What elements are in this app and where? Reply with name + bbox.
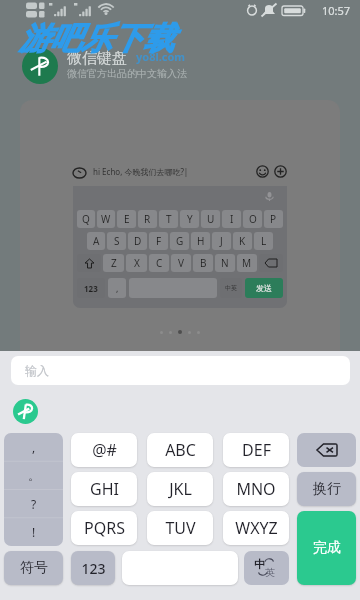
staticText: U bbox=[207, 212, 215, 226]
staticText: H bbox=[197, 234, 205, 248]
staticText: 游吧乐下载 bbox=[19, 19, 174, 58]
staticText: K bbox=[239, 234, 246, 248]
staticText: 123 bbox=[81, 559, 106, 578]
staticText: 。 bbox=[28, 468, 40, 483]
button[interactable]: 符号 bbox=[4, 551, 63, 585]
button[interactable]: WeChat keyboard logo bbox=[13, 399, 38, 424]
staticText: 英 bbox=[265, 566, 275, 579]
staticText: B bbox=[200, 256, 207, 270]
staticText: M bbox=[242, 256, 252, 270]
staticText: I bbox=[230, 212, 234, 226]
staticText: 微信官方出品的中文输入法 bbox=[67, 67, 187, 80]
button[interactable] bbox=[122, 551, 238, 585]
staticText: S bbox=[114, 234, 120, 248]
staticText: ABC bbox=[165, 439, 196, 461]
staticText: N bbox=[221, 256, 229, 270]
staticText: , bbox=[116, 282, 119, 294]
staticText: X bbox=[134, 256, 140, 270]
staticText: MNO bbox=[236, 478, 276, 500]
button[interactable]: @# bbox=[71, 433, 137, 467]
staticText: , bbox=[32, 439, 36, 455]
button[interactable]: Backspace bbox=[297, 433, 356, 467]
button[interactable]: , bbox=[4, 433, 63, 546]
button[interactable]: GHI bbox=[71, 472, 137, 506]
staticText: yo8l.com bbox=[136, 49, 186, 64]
staticText: PQRS bbox=[84, 517, 125, 539]
staticText: A bbox=[93, 234, 100, 248]
staticText: Z bbox=[111, 256, 117, 270]
staticText: 完成 bbox=[313, 539, 341, 557]
staticText: Y bbox=[187, 212, 193, 226]
staticText: G bbox=[176, 234, 184, 248]
staticText: 10:57 bbox=[322, 3, 351, 18]
staticText: 微信键盘 bbox=[67, 49, 127, 68]
staticText: T bbox=[166, 212, 172, 226]
staticText: O bbox=[249, 212, 257, 226]
staticText: GHI bbox=[90, 478, 119, 500]
button[interactable]: PQRS bbox=[71, 511, 137, 545]
staticText: ? bbox=[31, 496, 37, 512]
staticText: 换行 bbox=[313, 480, 341, 498]
staticText: P bbox=[270, 212, 277, 226]
staticText: hi Echo, 今晚我们去哪吃?| bbox=[93, 166, 189, 177]
staticText: WXYZ bbox=[235, 517, 278, 539]
button[interactable]: JKL bbox=[147, 472, 213, 506]
staticText: 发送 bbox=[256, 283, 272, 293]
button[interactable]: 完成 bbox=[297, 511, 356, 585]
button[interactable]: 中 bbox=[244, 551, 289, 585]
button[interactable]: 输入 bbox=[11, 356, 350, 385]
staticText: 中英 bbox=[225, 284, 237, 292]
staticText: R bbox=[144, 212, 151, 226]
button[interactable]: WXYZ bbox=[223, 511, 289, 545]
staticText: E bbox=[124, 212, 130, 226]
button[interactable]: DEF bbox=[223, 433, 289, 467]
staticText: 输入 bbox=[25, 363, 49, 378]
staticText: @# bbox=[92, 439, 117, 461]
staticText: L bbox=[261, 234, 267, 248]
staticText: C bbox=[156, 256, 163, 270]
staticText: Q bbox=[82, 212, 90, 226]
staticText: TUV bbox=[165, 517, 196, 539]
staticText: ! bbox=[32, 524, 36, 540]
button[interactable]: 123 bbox=[71, 551, 115, 585]
staticText: F bbox=[156, 234, 162, 248]
button[interactable]: ABC bbox=[147, 433, 213, 467]
staticText: W bbox=[101, 212, 111, 226]
staticText: JKL bbox=[169, 478, 192, 500]
staticText: D bbox=[134, 234, 142, 248]
button[interactable]: TUV bbox=[147, 511, 213, 545]
button[interactable]: MNO bbox=[223, 472, 289, 506]
staticText: 123 bbox=[84, 283, 98, 294]
staticText: J bbox=[220, 234, 223, 248]
staticText: DEF bbox=[242, 439, 271, 461]
staticText: 符号 bbox=[20, 559, 48, 577]
staticText: 中 bbox=[254, 557, 265, 571]
staticText: V bbox=[178, 256, 184, 270]
button[interactable]: 换行 bbox=[297, 472, 356, 506]
